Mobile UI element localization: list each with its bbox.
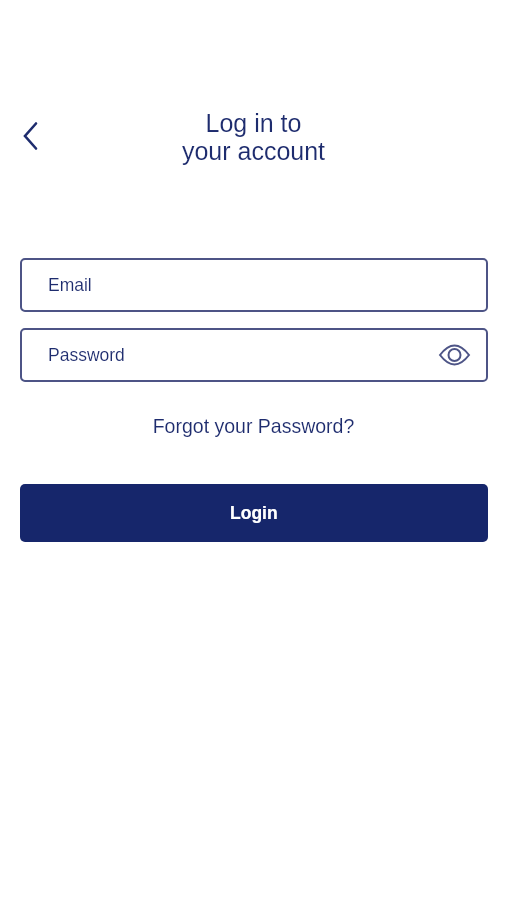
staticText: Password: [48, 345, 125, 365]
staticText: Email: [48, 275, 92, 295]
staticText: Log in to your account: [0, 109, 507, 166]
staticText: Login: [230, 503, 278, 523]
staticText: Forgot your Password?: [0, 415, 507, 437]
